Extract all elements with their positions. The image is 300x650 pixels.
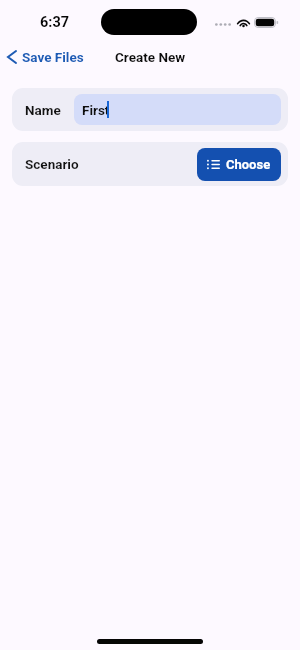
staticText: Save Files: [22, 49, 84, 65]
button[interactable]: Choose: [197, 148, 281, 181]
staticText: Create New: [115, 49, 186, 65]
staticText: Choose: [226, 157, 271, 172]
staticText: 6:37: [40, 14, 70, 31]
staticText: First: [82, 102, 110, 118]
staticText: Scenario: [25, 156, 79, 172]
button[interactable]: Save Files: [0, 45, 93, 69]
staticText: Name: [25, 102, 61, 118]
button[interactable]: First: [74, 94, 281, 125]
